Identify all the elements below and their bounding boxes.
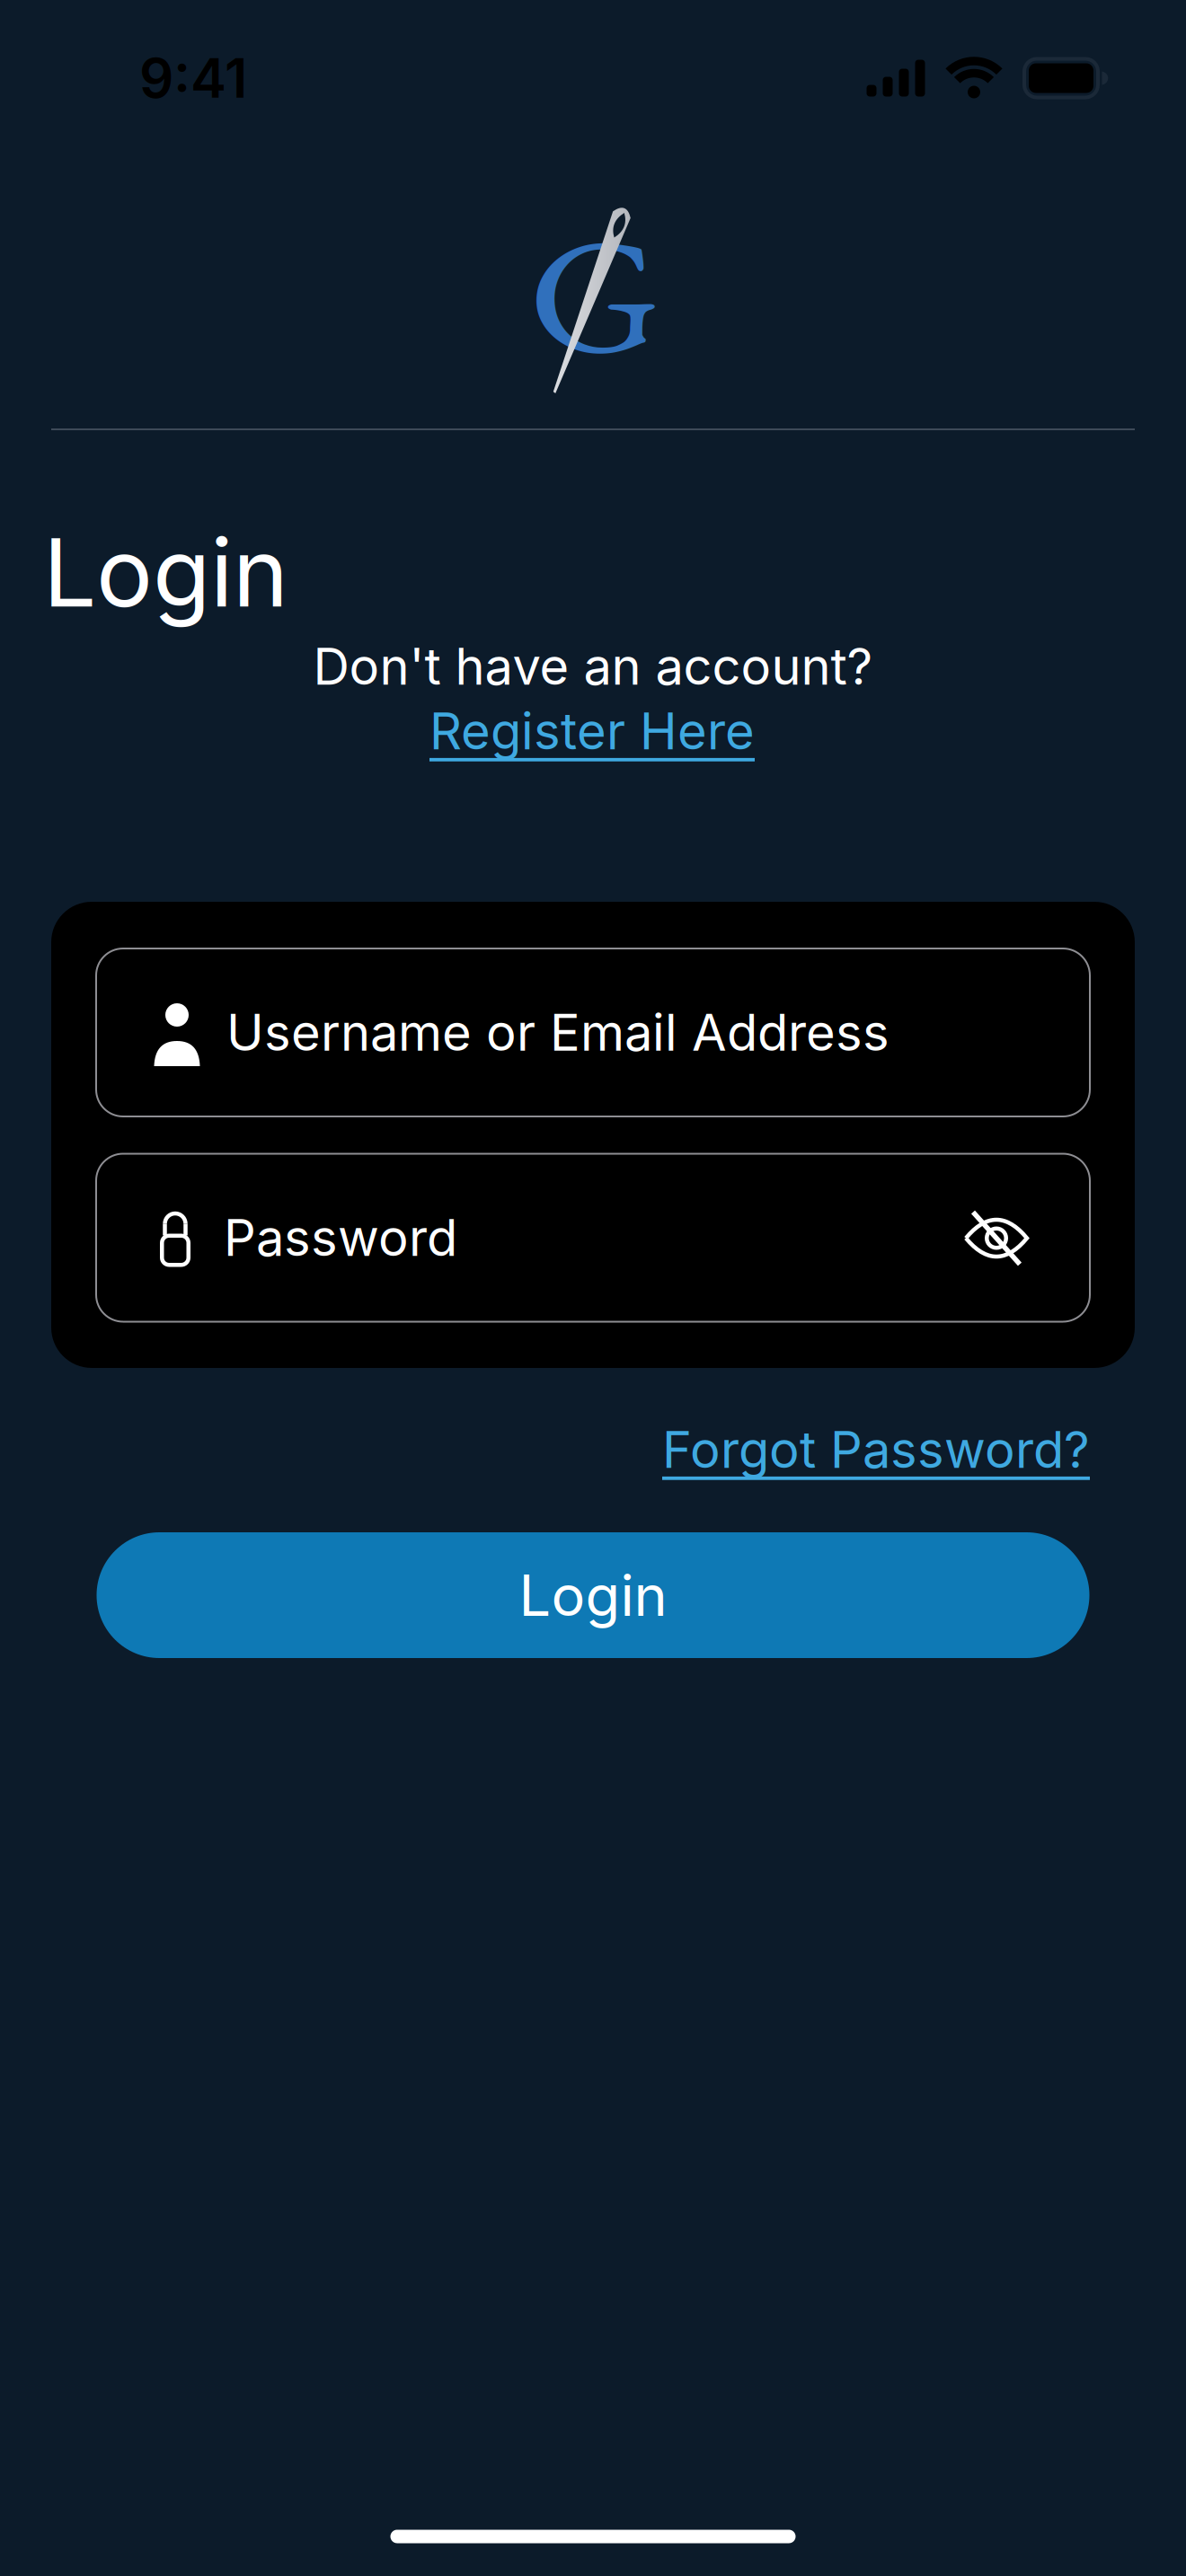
- staticText: Forgot Password?: [662, 1419, 1090, 1480]
- button[interactable]: Register Here: [429, 701, 755, 762]
- staticText: Don't have an account?: [313, 636, 873, 697]
- button[interactable]: Username or Email Address: [96, 948, 1090, 1116]
- button[interactable]: Forgot Password?: [662, 1419, 1090, 1480]
- staticText: Register Here: [429, 701, 755, 762]
- staticText: Username or Email Address: [226, 1002, 889, 1063]
- staticText: Password: [224, 1207, 457, 1268]
- button[interactable]: Password: [96, 1154, 1090, 1322]
- staticText: Login: [43, 515, 288, 629]
- staticText: 9:41: [139, 46, 247, 111]
- staticText: Login: [519, 1561, 667, 1629]
- staticText: G: [535, 187, 654, 400]
- button[interactable]: Login: [97, 1532, 1089, 1658]
